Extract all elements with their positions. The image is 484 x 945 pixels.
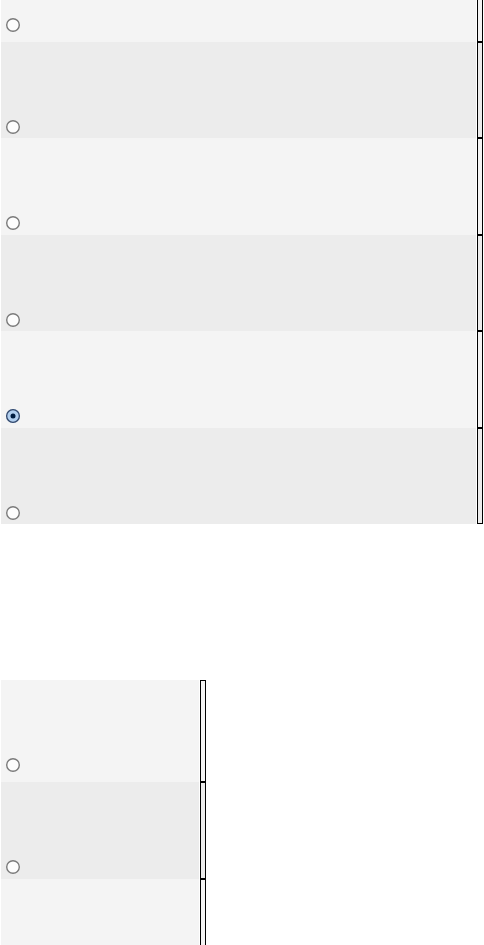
- button[interactable]: Choice: [0, 782, 206, 879]
- button[interactable]: Choice: [0, 235, 483, 331]
- button[interactable]: Choice: [3, 310, 23, 330]
- button[interactable]: Choice: [0, 428, 483, 524]
- button[interactable]: Choice: [0, 138, 483, 235]
- button[interactable]: Choice: [3, 15, 23, 35]
- button[interactable]: Choice: [3, 117, 23, 137]
- button[interactable]: Choice: [0, 879, 206, 945]
- button[interactable]: Selected choice: [0, 331, 483, 428]
- button[interactable]: Choice: [3, 503, 23, 523]
- button[interactable]: Choice: [0, 0, 483, 42]
- button[interactable]: Choice: [0, 680, 206, 782]
- button[interactable]: Selected choice: [3, 406, 23, 426]
- button[interactable]: Choice: [3, 857, 23, 877]
- button[interactable]: Choice: [3, 213, 23, 233]
- button[interactable]: Choice: [3, 755, 23, 775]
- button[interactable]: Choice: [0, 42, 483, 138]
